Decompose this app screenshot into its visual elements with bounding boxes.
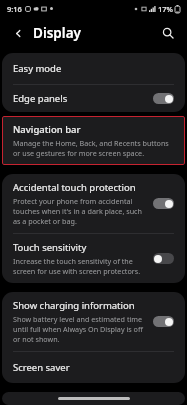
staticText: Display [33,24,81,42]
staticText: Accidental touch protection [13,181,136,194]
button[interactable]: Looking for something else? [2,392,185,405]
button[interactable]: On [153,198,174,209]
button[interactable]: On [153,316,174,327]
button[interactable]: Search [157,22,179,44]
button[interactable]: Navigation bar [2,116,185,165]
staticText: Easy mode [13,62,62,75]
button[interactable]: Show charging information [2,292,185,351]
staticText: Increase the touch sensitivity of the sc… [13,256,146,276]
button[interactable]: Off [153,253,174,264]
button[interactable]: Touch sensitivity [2,234,185,283]
button[interactable]: Easy mode [2,53,185,84]
staticText: Manage the Home, Back, and Recents butto… [13,138,174,158]
staticText: 9:16 [7,4,22,14]
staticText: Screen saver [13,361,70,374]
staticText: Show battery level and estimated time un… [13,314,146,344]
button[interactable]: Accidental touch protection [2,174,185,233]
staticText: Show charging information [13,299,135,312]
staticText: Navigation bar [13,123,81,136]
staticText: 17% [158,4,173,14]
button[interactable]: Edge panels [2,85,185,112]
staticText: Protect your phone from accidental touch… [13,196,146,226]
staticText: Edge panels [13,92,68,105]
staticText: Touch sensitivity [13,241,87,254]
button[interactable]: Screen saver [2,352,185,383]
button[interactable]: Back [8,23,28,43]
button[interactable]: On [153,93,174,104]
